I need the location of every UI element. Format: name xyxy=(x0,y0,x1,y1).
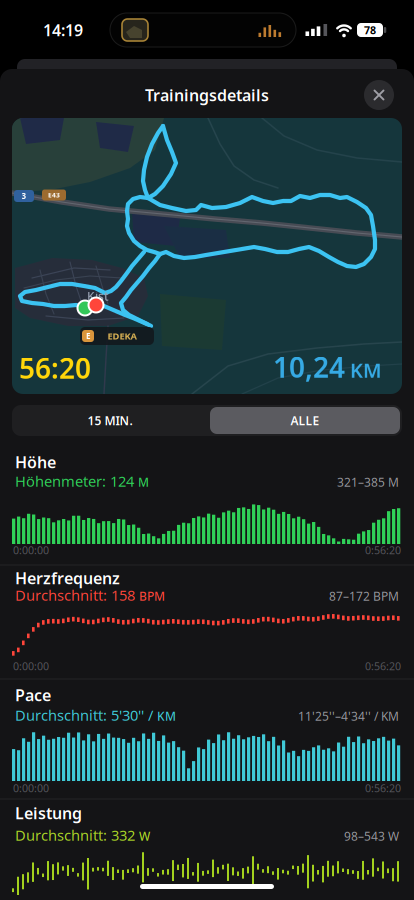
staticText: 78 xyxy=(364,23,376,37)
staticText: 0:00:00 xyxy=(13,543,49,557)
staticText: 0:56:20 xyxy=(365,543,401,557)
staticText: Höhenmeter: 124 xyxy=(15,471,138,491)
staticText: 0:56:20 xyxy=(365,659,401,673)
button[interactable]: Trainingsroute auf Karte anzeigen xyxy=(12,118,402,394)
staticText: EDEKA xyxy=(107,330,136,342)
button[interactable]: Schließen xyxy=(364,80,394,110)
staticText: Durchschnitt: 5'30'' / xyxy=(15,705,157,725)
staticText: ALLE xyxy=(290,412,319,428)
button[interactable]: 15 MIN. xyxy=(15,407,205,434)
staticText: 56:20 xyxy=(19,349,91,387)
staticText: Durchschnitt: 158 xyxy=(15,585,139,605)
staticText: 3 xyxy=(21,191,26,201)
staticText: Pace xyxy=(15,684,51,706)
staticText: Kist xyxy=(87,288,109,304)
button[interactable]: ALLE xyxy=(210,407,400,434)
staticText: 0:56:20 xyxy=(365,781,401,795)
staticText: Leistung xyxy=(15,802,82,824)
staticText: Trainingsdetails xyxy=(145,84,269,106)
staticText: M xyxy=(138,474,149,490)
staticText: KM xyxy=(157,708,176,724)
staticText: 87–172 BPM xyxy=(329,588,399,604)
staticText: W xyxy=(139,828,150,844)
staticText: 15 MIN. xyxy=(87,412,132,428)
staticText: 14:19 xyxy=(43,19,83,41)
staticText: 0:00:00 xyxy=(13,781,49,795)
staticText: 10,24 xyxy=(273,348,345,386)
staticText: 321–385 M xyxy=(337,474,399,490)
staticText: 11'25''–4'34'' / KM xyxy=(298,708,399,724)
staticText: KM xyxy=(350,357,382,383)
staticText: Herzfrequenz xyxy=(15,567,120,589)
staticText: E43 xyxy=(48,191,60,199)
staticText: BPM xyxy=(139,588,165,604)
staticText: Durchschnitt: 332 xyxy=(15,825,139,845)
staticText: Höhe xyxy=(15,451,56,473)
staticText: 0:00:00 xyxy=(13,659,49,673)
staticText: 98–543 W xyxy=(344,828,399,844)
staticText: E xyxy=(86,331,90,341)
